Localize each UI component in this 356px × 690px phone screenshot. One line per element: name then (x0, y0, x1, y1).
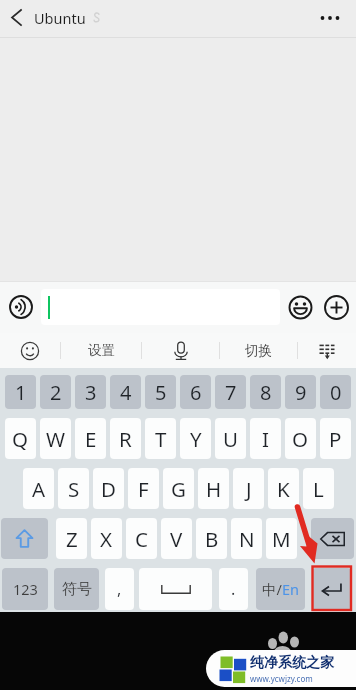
staticText: Ubuntu (34, 8, 86, 28)
staticText: G (171, 475, 186, 503)
button[interactable]: J (233, 468, 264, 509)
staticText: , (117, 578, 122, 600)
staticText: T (155, 425, 167, 453)
button[interactable]: 7 (215, 375, 246, 409)
button[interactable]: Switch language (256, 568, 305, 610)
staticText: N (239, 525, 255, 553)
button[interactable]: Z (56, 518, 87, 559)
staticText: A (32, 475, 46, 503)
button[interactable]: Add attachment (318, 281, 354, 333)
button[interactable]: Emoji (282, 281, 318, 333)
staticText: 纯净系统之家 (250, 654, 334, 672)
button[interactable]: B (196, 518, 227, 559)
staticText: Q (12, 425, 29, 453)
staticText: 2 (50, 379, 62, 406)
button[interactable]: Back (0, 0, 32, 35)
staticText: 切换 (245, 342, 272, 359)
button[interactable]: 123 (2, 568, 48, 610)
staticText: O (292, 425, 309, 453)
button[interactable]: A (23, 468, 54, 509)
staticText: 6 (190, 379, 202, 406)
staticText: M (272, 525, 291, 553)
staticText: C (135, 525, 148, 553)
button[interactable]: P (320, 418, 351, 459)
button[interactable] (41, 289, 280, 325)
staticText: W (46, 425, 66, 453)
button[interactable]: N (231, 518, 262, 559)
staticText: 8 (260, 379, 272, 406)
button[interactable]: V (161, 518, 192, 559)
button[interactable]: F (128, 468, 159, 509)
staticText: 设置 (88, 342, 115, 359)
button[interactable]: Enter (312, 568, 351, 610)
button[interactable]: Backspace (311, 518, 354, 559)
button[interactable]: R (110, 418, 141, 459)
button[interactable]: 设置 (61, 333, 141, 368)
staticText: I (262, 425, 269, 453)
button[interactable]: Q (5, 418, 36, 459)
button[interactable]: 6 (180, 375, 211, 409)
button[interactable]: U (215, 418, 246, 459)
button[interactable]: X (91, 518, 122, 559)
button[interactable]: C (126, 518, 157, 559)
staticText: 9 (295, 379, 307, 406)
staticText: K (277, 475, 290, 503)
staticText: H (206, 475, 222, 503)
button[interactable]: O (285, 418, 316, 459)
button[interactable]: Shift (1, 518, 48, 559)
button[interactable]: , (105, 568, 134, 610)
button[interactable]: Voice input (0, 281, 41, 333)
button[interactable]: S (58, 468, 89, 509)
staticText: 4 (120, 379, 132, 406)
button[interactable]: Emoji (0, 333, 60, 368)
button[interactable]: D (93, 468, 124, 509)
button[interactable]: 0 (320, 375, 351, 409)
staticText: S (68, 475, 80, 503)
button[interactable]: 符号 (54, 568, 99, 610)
button[interactable]: H (198, 468, 229, 509)
staticText: . (231, 578, 236, 600)
staticText: X (100, 525, 113, 553)
staticText: 123 (13, 579, 38, 599)
button[interactable]: 切换 (220, 333, 297, 368)
button[interactable]: M (266, 518, 297, 559)
button[interactable]: 9 (285, 375, 316, 409)
button[interactable]: 5 (145, 375, 176, 409)
staticText: 中/En (262, 579, 299, 599)
staticText: D (101, 475, 116, 503)
button[interactable]: 8 (250, 375, 281, 409)
staticText: 1 (15, 379, 27, 406)
staticText: U (223, 425, 238, 453)
staticText: L (313, 475, 324, 503)
button[interactable]: T (145, 418, 176, 459)
button[interactable]: 1 (5, 375, 36, 409)
staticText: Y (190, 425, 202, 453)
button[interactable]: E (75, 418, 106, 459)
staticText: P (329, 425, 342, 453)
button[interactable]: . (219, 568, 248, 610)
button[interactable]: Keyboard settings (298, 333, 356, 368)
staticText: B (205, 525, 219, 553)
button[interactable]: 3 (75, 375, 106, 409)
button[interactable]: W (40, 418, 71, 459)
staticText: Z (66, 525, 78, 553)
button[interactable]: I (250, 418, 281, 459)
button[interactable]: L (303, 468, 334, 509)
staticText: 符号 (62, 580, 92, 599)
button[interactable]: Y (180, 418, 211, 459)
button[interactable]: K (268, 468, 299, 509)
staticText: www.ycwjzy.com (250, 673, 313, 684)
staticText: J (246, 475, 252, 503)
staticText: E (85, 425, 97, 453)
staticText: R (119, 425, 132, 453)
staticText: 5 (155, 379, 167, 406)
staticText: F (138, 475, 149, 503)
button[interactable]: G (163, 468, 194, 509)
button[interactable]: 4 (110, 375, 141, 409)
staticText: 0 (330, 379, 342, 406)
button[interactable]: Voice keyboard (142, 333, 219, 368)
button[interactable]: Space (139, 568, 212, 610)
button[interactable]: 2 (40, 375, 71, 409)
button[interactable]: More options (308, 0, 352, 35)
staticText: 3 (85, 379, 97, 406)
